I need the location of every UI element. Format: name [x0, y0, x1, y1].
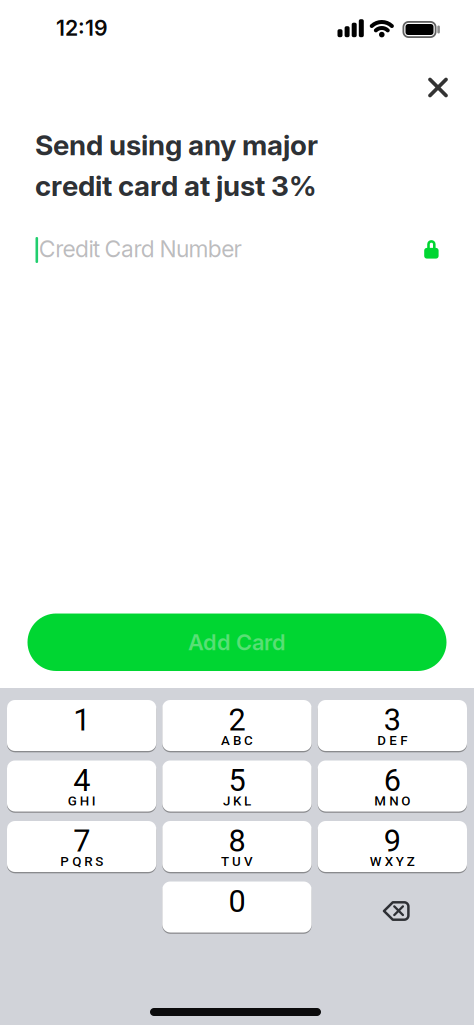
- button[interactable]: Delete: [318, 881, 467, 932]
- button[interactable]: Close: [422, 71, 454, 103]
- staticText: G H I: [68, 793, 96, 809]
- button[interactable]: 5: [162, 760, 312, 811]
- button[interactable]: 9: [318, 821, 467, 872]
- staticText: T U V: [221, 854, 253, 869]
- staticText: M N O: [374, 793, 410, 809]
- button[interactable]: 0: [162, 881, 312, 932]
- staticText: 2: [228, 702, 245, 738]
- staticText: 4: [73, 762, 90, 798]
- staticText: 9: [384, 823, 401, 859]
- staticText: 1: [73, 702, 90, 738]
- button[interactable]: 4: [7, 760, 156, 811]
- staticText: 12:19: [56, 15, 108, 41]
- staticText: Credit Card Number: [39, 235, 242, 263]
- staticText: W X Y Z: [370, 854, 415, 869]
- staticText: J K L: [223, 793, 251, 809]
- staticText: Send using any major credit card at just…: [35, 128, 318, 203]
- button[interactable]: Add Card: [27, 613, 446, 671]
- button[interactable]: 7: [7, 821, 156, 872]
- staticText: 3: [384, 702, 401, 738]
- button[interactable]: 3: [318, 700, 467, 751]
- staticText: 5: [228, 762, 245, 798]
- staticText: Add Card: [188, 629, 286, 655]
- button[interactable]: 1: [7, 700, 156, 751]
- staticText: A B C: [221, 733, 253, 748]
- button[interactable]: Credit Card Number: [27, 227, 447, 273]
- staticText: 7: [73, 823, 90, 859]
- staticText: 8: [228, 823, 245, 859]
- staticText: 6: [384, 762, 401, 798]
- button[interactable]: 6: [318, 760, 467, 811]
- staticText: 0: [228, 883, 245, 919]
- button[interactable]: 8: [162, 821, 312, 872]
- staticText: D E F: [377, 733, 407, 748]
- button[interactable]: 2: [162, 700, 312, 751]
- staticText: P Q R S: [60, 854, 103, 869]
